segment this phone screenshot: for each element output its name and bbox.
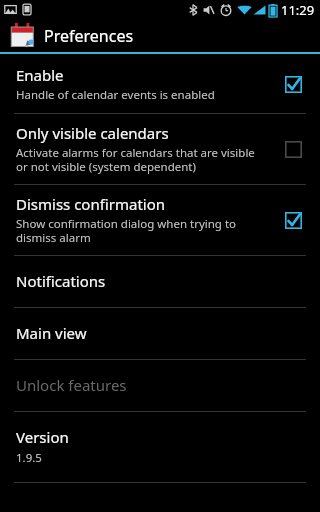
button[interactable]: Only visible calendars xyxy=(0,114,320,184)
button[interactable]: Notifications xyxy=(0,256,320,307)
button[interactable]: Preferences xyxy=(0,19,320,52)
staticText: Notifications xyxy=(16,271,106,291)
staticText: Main view xyxy=(16,323,87,343)
staticText: Version xyxy=(16,427,69,447)
staticText: Activate alarms for calendars that are v… xyxy=(16,145,255,174)
staticText: Show confirmation dialog when trying to … xyxy=(16,216,237,245)
staticText: Only visible calendars xyxy=(16,123,169,143)
staticText: 11:29 xyxy=(281,1,315,19)
button[interactable]: Main view xyxy=(0,308,320,359)
button[interactable]: Checked xyxy=(278,69,308,99)
button[interactable]: Version xyxy=(0,412,320,482)
staticText: Enable xyxy=(16,65,64,85)
button[interactable]: Checked xyxy=(278,205,308,235)
button[interactable]: Enable xyxy=(0,56,320,113)
staticText: Unlock features xyxy=(16,375,127,395)
button[interactable]: Dismiss confirmation xyxy=(0,185,320,255)
staticText: Preferences xyxy=(44,25,134,47)
staticText: Dismiss confirmation xyxy=(16,194,166,214)
staticText: Handle of calendar events is enabled xyxy=(16,87,215,103)
staticText: 1.9.5 xyxy=(16,450,42,466)
button[interactable]: Unchecked xyxy=(278,134,308,164)
button[interactable]: Unlock features xyxy=(0,360,320,411)
